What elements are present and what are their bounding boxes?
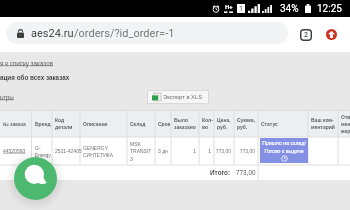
staticText: 1 [208,148,211,154]
staticText: Описание [83,121,108,127]
staticText: 34% [280,3,299,15]
staticText: 773,00 [215,148,231,154]
button[interactable]: aes24.ru [6,22,288,44]
staticText: я к списку заказов [0,60,53,67]
staticText: G- Energy [35,145,51,158]
staticText: 1 [193,148,196,154]
staticText: 12:25 [317,3,342,15]
staticText: 44520593 [3,148,26,154]
button[interactable]: Экспорт в XLS [147,90,209,104]
button[interactable]: Update [326,29,337,40]
button[interactable]: Пришло на склад/ Готово к выдаче [260,138,308,163]
staticText: Срок [158,121,171,127]
staticText: Было заказано [174,117,196,130]
staticText: Цена, руб. [217,117,231,130]
staticText: 3 дн [158,148,168,154]
staticText: Бренд [35,121,51,127]
staticText: ьтры [0,94,14,101]
button[interactable]: я к списку заказов [0,60,53,67]
button[interactable]: Chat [14,157,57,200]
staticText: Код детали [55,117,73,130]
staticText: 2531-42405 [55,148,82,154]
staticText: № заказа [3,121,26,127]
staticText: H+ [225,3,233,10]
staticText: 2 [304,31,308,39]
staticText: /orders/?id_order=-1 [74,27,175,40]
staticText: MSK TRANSIT 3 [130,141,152,162]
staticText: 1 [239,5,243,13]
staticText: Сумма, руб. [237,117,255,130]
staticText: Статус [261,121,278,127]
staticText: Кол- во [202,117,213,130]
staticText: Пришло на склад/ Готово к выдаче [260,140,308,154]
staticText: aes24.ru [31,27,74,40]
staticText: Склад [130,121,146,127]
staticText: 773,00 [236,169,256,176]
staticText: Ваш ком- ментарий [311,117,335,130]
staticText: GENERGY СИНТЕТИКА [83,145,114,158]
staticText: Отве- мени жерн [341,114,350,134]
staticText: ация обо всех заказах [0,74,70,81]
button[interactable]: ьтры [0,94,14,101]
staticText: Итого: [210,169,231,176]
staticText: 773,00 [239,148,255,154]
staticText: Экспорт в XLS [163,94,203,100]
button[interactable]: Tabs [300,29,312,41]
